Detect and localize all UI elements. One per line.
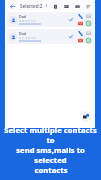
button[interactable]: Selected xyxy=(68,16,75,23)
button[interactable]: WhatsApp xyxy=(85,20,91,26)
button[interactable]: Compose message xyxy=(80,111,91,122)
button[interactable]: Call xyxy=(77,13,83,19)
button[interactable]: SMS xyxy=(85,13,91,19)
button[interactable]: WhatsApp xyxy=(85,37,91,43)
button[interactable]: Selected xyxy=(68,33,75,40)
button[interactable]: Dad xyxy=(7,29,93,44)
button[interactable]: Call xyxy=(77,30,83,36)
button[interactable]: More options xyxy=(84,2,92,10)
staticText: Dad xyxy=(19,31,26,36)
staticText: Dad xyxy=(19,14,26,19)
button[interactable]: Message xyxy=(62,2,70,10)
button[interactable]: Delete xyxy=(51,2,59,10)
button[interactable]: Gmail xyxy=(77,37,83,43)
button[interactable]: Back xyxy=(8,2,16,10)
staticText: Select multiple contacts to xyxy=(0,125,101,145)
staticText: Selected:2 xyxy=(20,3,43,9)
button[interactable]: SMS xyxy=(85,30,91,36)
button[interactable]: Email xyxy=(73,2,81,10)
button[interactable]: Gmail xyxy=(77,20,83,26)
staticText: send sms,mails to selected xyxy=(0,145,101,165)
button[interactable]: Dad xyxy=(7,12,93,27)
staticText: contacts xyxy=(34,165,68,175)
